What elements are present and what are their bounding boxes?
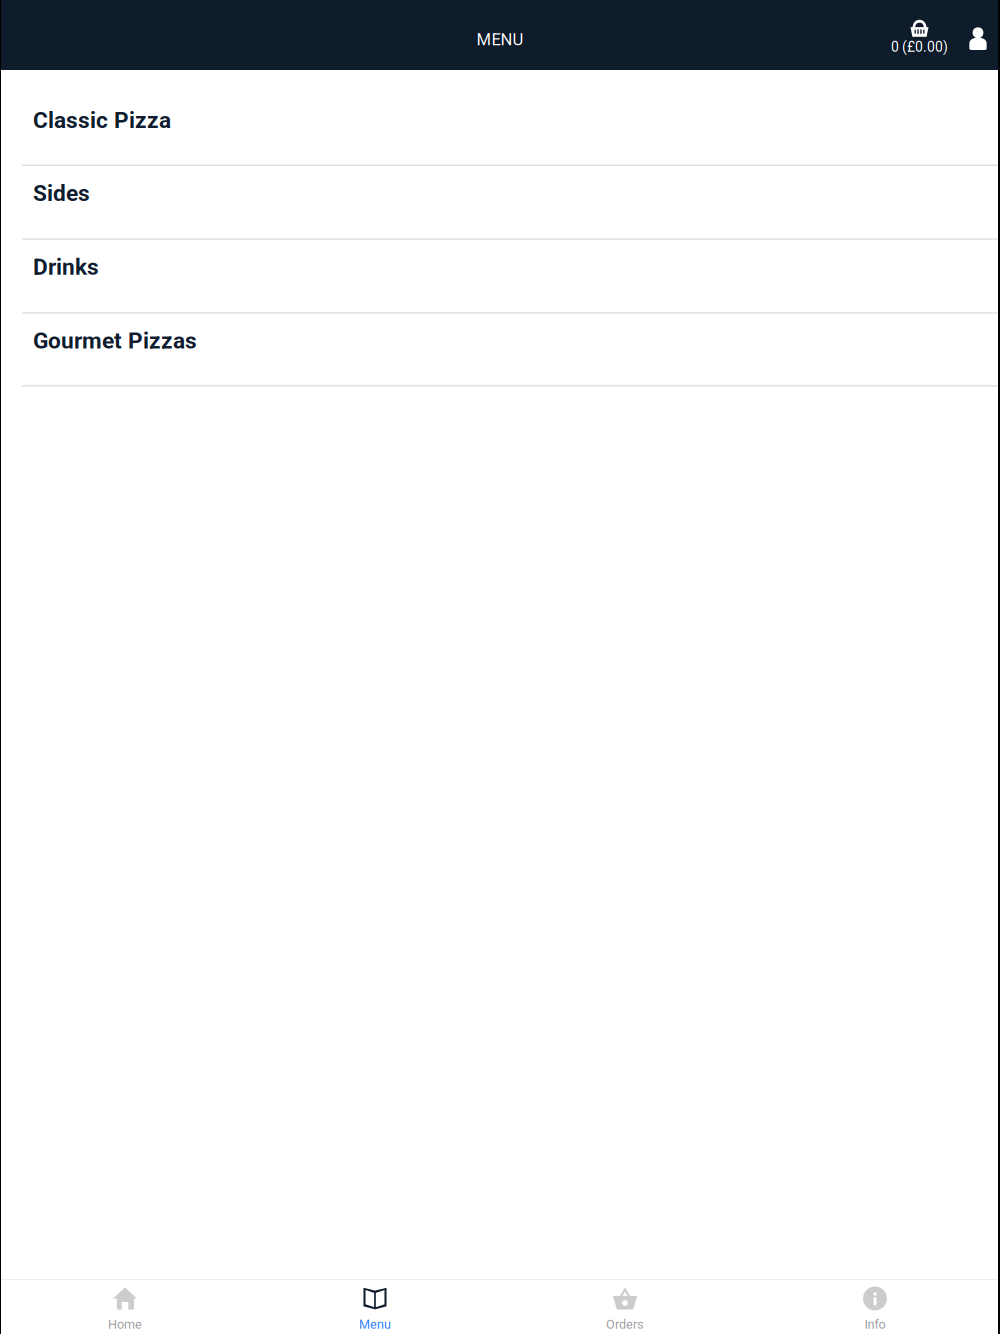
staticText: Menu bbox=[359, 1317, 391, 1332]
button[interactable]: Menu bbox=[250, 1280, 500, 1334]
staticText: Classic Pizza bbox=[33, 107, 171, 134]
staticText: Info bbox=[864, 1317, 885, 1332]
staticText: Drinks bbox=[33, 254, 99, 280]
button[interactable]: Sides bbox=[0, 166, 1000, 240]
button[interactable]: 0 (£0.00) bbox=[891, 8, 948, 62]
staticText: 0 (£0.00) bbox=[891, 39, 948, 55]
staticText: Sides bbox=[33, 180, 90, 206]
button[interactable]: Home bbox=[0, 1280, 250, 1334]
staticText: Home bbox=[108, 1317, 142, 1332]
button[interactable]: Account bbox=[948, 20, 1000, 50]
button[interactable]: Info bbox=[750, 1280, 1000, 1334]
staticText: Orders bbox=[606, 1317, 644, 1332]
staticText: MENU bbox=[476, 30, 523, 49]
button[interactable]: Gourmet Pizzas bbox=[0, 314, 1000, 386]
button[interactable]: Drinks bbox=[0, 240, 1000, 314]
button[interactable]: Classic Pizza bbox=[0, 70, 1000, 166]
staticText: Gourmet Pizzas bbox=[33, 328, 197, 354]
button[interactable]: Orders bbox=[500, 1280, 750, 1334]
